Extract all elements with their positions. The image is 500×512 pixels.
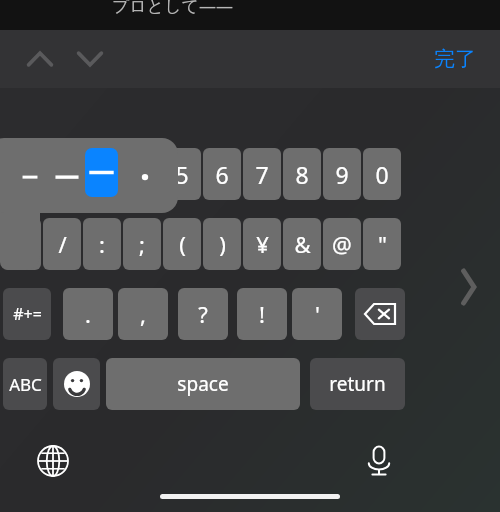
staticText: ! <box>259 299 265 329</box>
button[interactable] <box>128 148 162 204</box>
button[interactable]: #+= <box>3 288 51 340</box>
staticText: 6 <box>215 159 229 190</box>
button[interactable] <box>13 148 47 204</box>
button[interactable]: . <box>63 288 113 340</box>
button[interactable]: 7 <box>243 148 281 200</box>
button[interactable]: : <box>83 218 121 270</box>
button[interactable]: 9 <box>323 148 361 200</box>
button[interactable]: Emoji <box>53 358 100 410</box>
button[interactable]: 2 <box>43 148 81 200</box>
button[interactable]: Delete <box>355 288 405 340</box>
button[interactable]: 完了 <box>424 38 486 80</box>
button[interactable]: " <box>363 218 401 270</box>
button[interactable]: ) <box>203 218 241 270</box>
staticText: : <box>99 229 105 259</box>
button[interactable]: 1 <box>3 148 41 200</box>
staticText: 9 <box>335 159 349 190</box>
button[interactable]: 4 <box>123 148 161 200</box>
staticText: / <box>58 229 67 259</box>
button[interactable]: ' <box>292 288 342 340</box>
button[interactable]: Previous field <box>18 38 62 80</box>
button[interactable]: 8 <box>283 148 321 200</box>
staticText: 4 <box>135 159 149 190</box>
button[interactable]: Switch keyboard <box>28 436 78 486</box>
button[interactable]: ! <box>237 288 287 340</box>
staticText: プロとして—— <box>112 0 233 17</box>
staticText: , <box>140 299 146 329</box>
button[interactable]: ? <box>178 288 228 340</box>
staticText: ) <box>219 229 226 259</box>
staticText: 0 <box>375 159 389 190</box>
staticText: " <box>378 229 387 259</box>
button[interactable]: ( <box>163 218 201 270</box>
button[interactable]: / <box>43 218 81 270</box>
button[interactable]: ¥ <box>243 218 281 270</box>
button[interactable]: space <box>106 358 300 410</box>
staticText: 2 <box>55 159 69 190</box>
staticText: space <box>177 371 229 397</box>
button[interactable]: Expand <box>450 262 490 312</box>
button[interactable]: ABC <box>3 358 47 410</box>
staticText: @ <box>332 229 352 259</box>
staticText: 7 <box>255 159 269 190</box>
staticText: 3 <box>95 159 109 190</box>
button[interactable]: ; <box>123 218 161 270</box>
button[interactable]: & <box>283 218 321 270</box>
staticText: 8 <box>295 159 309 190</box>
button[interactable]: 0 <box>363 148 401 200</box>
staticText: ; <box>139 229 145 259</box>
staticText: ? <box>198 299 208 329</box>
button[interactable] <box>85 148 118 197</box>
button[interactable]: , <box>118 288 168 340</box>
staticText: 完了 <box>434 46 476 72</box>
staticText: ' <box>315 299 320 329</box>
staticText: return <box>329 371 386 397</box>
button[interactable]: - <box>3 218 41 270</box>
staticText: #+= <box>13 303 42 325</box>
staticText: ( <box>179 229 186 259</box>
button[interactable]: 5 <box>163 148 201 200</box>
button[interactable] <box>50 148 84 204</box>
staticText: ¥ <box>256 229 269 259</box>
staticText: 5 <box>175 159 189 190</box>
staticText: 1 <box>15 159 29 190</box>
button[interactable]: Dictate <box>354 436 404 486</box>
button[interactable]: 6 <box>203 148 241 200</box>
button[interactable]: 3 <box>83 148 121 200</box>
button[interactable]: @ <box>323 218 361 270</box>
staticText: ABC <box>9 373 42 396</box>
staticText: . <box>85 299 91 329</box>
button[interactable]: Next field <box>68 38 112 80</box>
staticText: & <box>294 229 311 259</box>
button[interactable]: return <box>310 358 405 410</box>
